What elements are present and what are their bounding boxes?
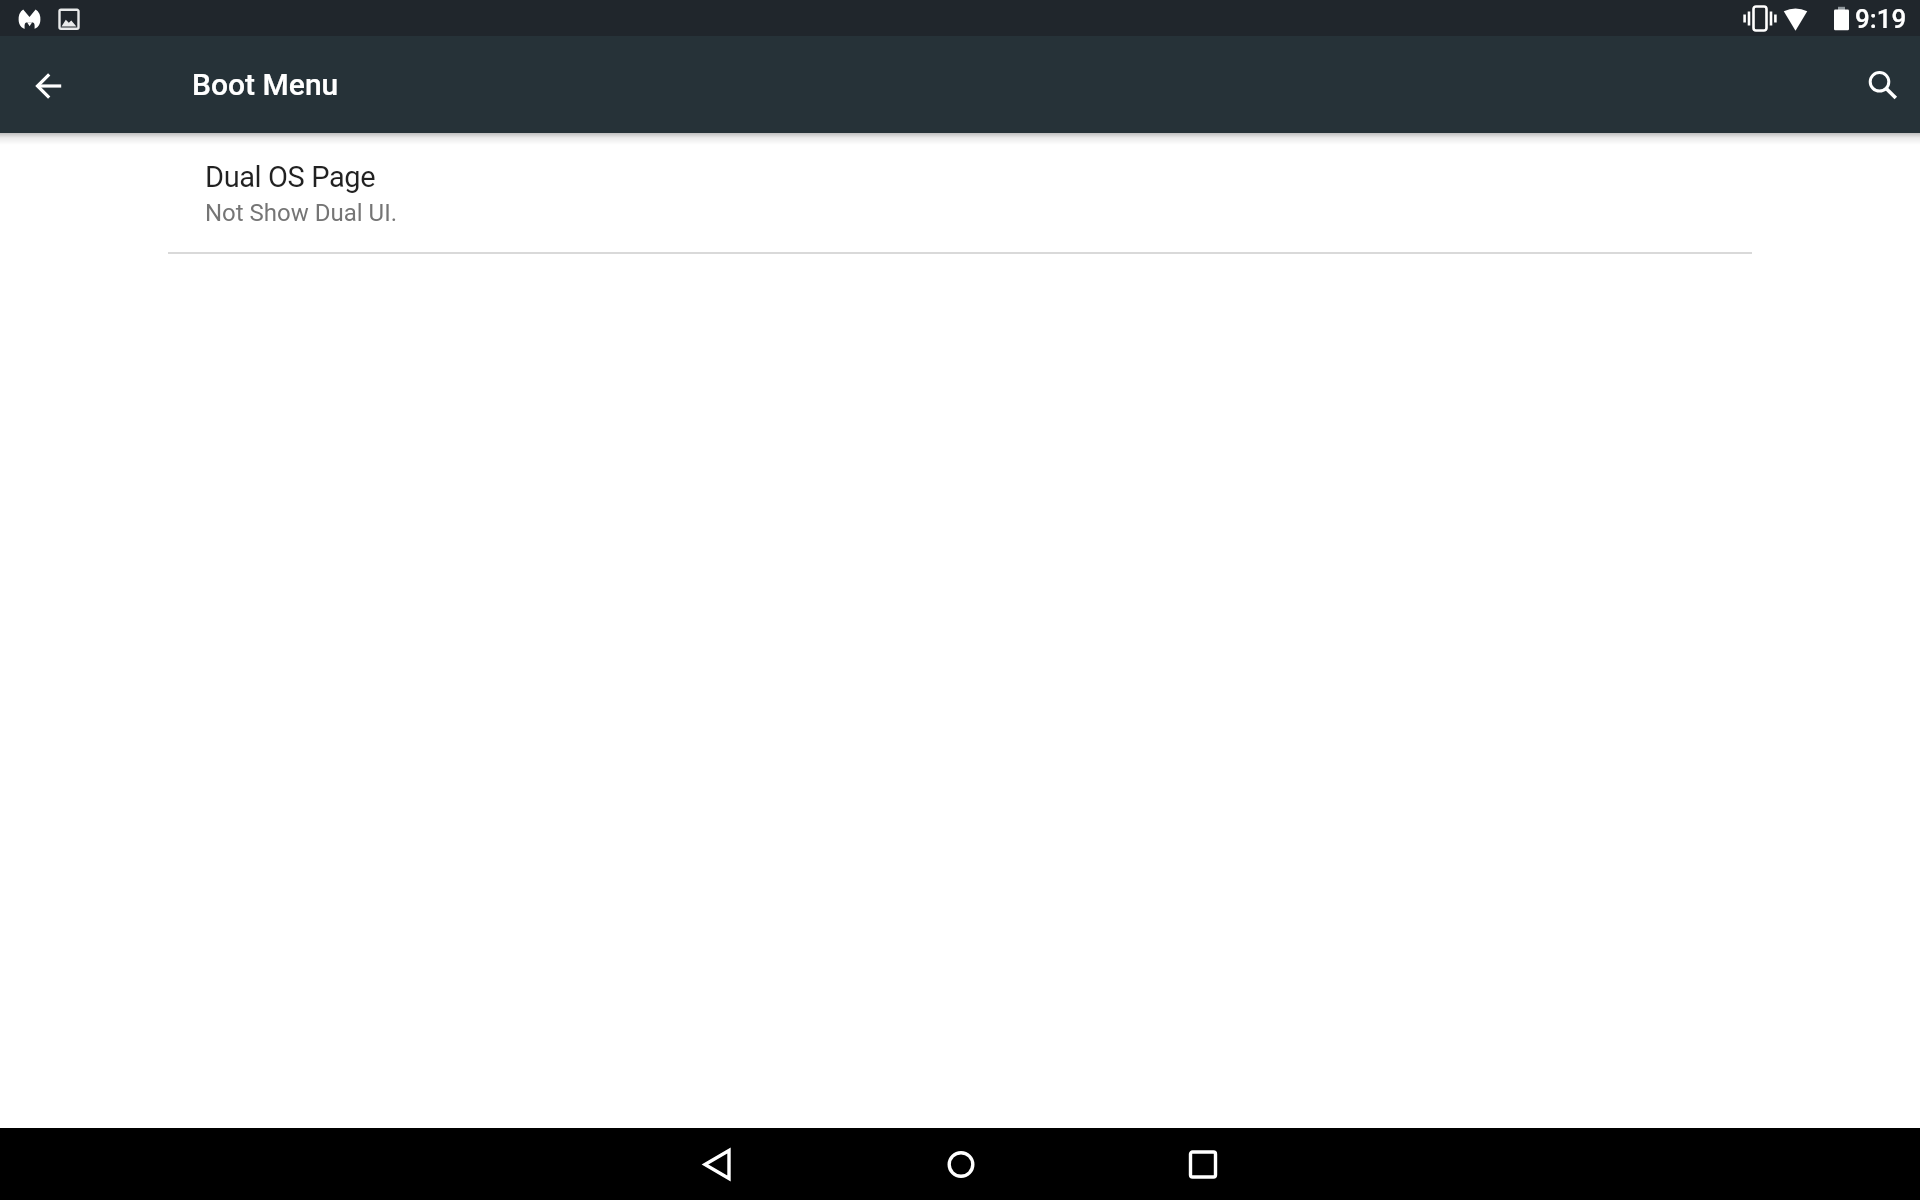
staticText: Dual OS Page [205,160,376,194]
staticText: Boot Menu [192,67,339,102]
button[interactable] [1860,58,1908,106]
button[interactable] [25,62,73,110]
button[interactable]: Dual OS Page [168,136,1752,252]
button[interactable] [1179,1140,1227,1188]
staticText: 9:19 [1855,4,1907,34]
button[interactable] [693,1140,741,1188]
button[interactable] [937,1140,985,1188]
staticText: Not Show Dual UI. [205,199,397,227]
